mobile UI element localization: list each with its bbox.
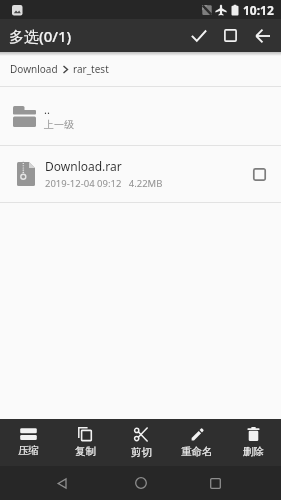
staticText: 剪切 (131, 446, 152, 459)
staticText: 多选(0/1) (9, 26, 72, 46)
staticText: 10:12 (243, 2, 274, 18)
staticText: 上一级 (44, 118, 74, 131)
button[interactable]: Download (0, 52, 281, 86)
button[interactable]: Download.rar (0, 146, 281, 202)
button[interactable]: .. (0, 87, 281, 145)
button[interactable]: 删除 (225, 419, 281, 466)
button[interactable] (215, 19, 246, 52)
staticText: 复制 (75, 445, 96, 458)
button[interactable]: 压缩 (0, 419, 57, 466)
staticText: 压缩 (18, 444, 39, 457)
button[interactable] (246, 154, 272, 194)
staticText: rar_test (73, 62, 109, 76)
button[interactable] (44, 466, 80, 500)
button[interactable]: 重命名 (169, 419, 225, 466)
button[interactable] (183, 19, 215, 52)
staticText: Download.rar (45, 158, 122, 174)
staticText: 删除 (243, 445, 264, 458)
button[interactable] (197, 466, 234, 500)
button[interactable]: 剪切 (113, 419, 169, 466)
staticText: 重命名 (181, 445, 213, 458)
staticText: Download (10, 62, 58, 76)
button[interactable] (246, 19, 280, 52)
staticText: .. (44, 102, 50, 117)
staticText: 2019-12-04 09:12 4.22MB (45, 177, 163, 190)
button[interactable] (122, 466, 159, 500)
button[interactable]: 复制 (57, 419, 113, 466)
